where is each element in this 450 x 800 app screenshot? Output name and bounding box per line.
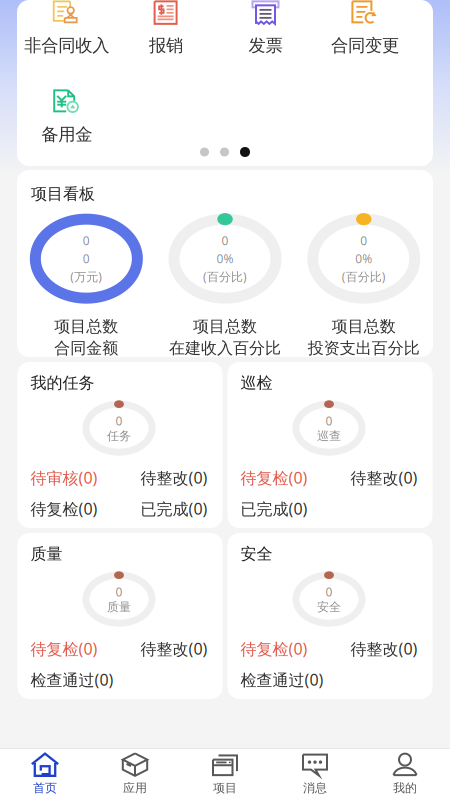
- staticText: 安全: [240, 544, 272, 564]
- button[interactable]: 待复检(0): [30, 498, 97, 520]
- staticText: 项目看板: [31, 184, 95, 204]
- staticText: 消息: [303, 781, 327, 795]
- staticText: 项目总数: [332, 317, 396, 336]
- staticText: (百分比): [342, 269, 386, 284]
- button[interactable]: 应用: [90, 748, 180, 800]
- staticText: (万元): [70, 269, 102, 284]
- staticText: 0: [115, 584, 122, 600]
- staticText: 应用: [123, 781, 147, 795]
- button[interactable]: 已完成(0): [240, 498, 307, 520]
- staticText: 巡查: [317, 429, 341, 443]
- staticText: 待审核(0): [30, 467, 97, 488]
- staticText: 在建收入百分比: [169, 338, 281, 358]
- button[interactable]: 待整改(0): [350, 467, 417, 489]
- staticText: 检查通过(0): [240, 669, 323, 690]
- button[interactable]: 待整改(0): [350, 638, 417, 660]
- button[interactable]: 待复检(0): [30, 638, 97, 660]
- button[interactable]: 合同变更: [315, 3, 415, 53]
- button[interactable]: 待审核(0): [30, 467, 97, 489]
- button[interactable]: 检查通过(0): [30, 669, 113, 691]
- staticText: 待复检(0): [240, 467, 307, 488]
- staticText: 报销: [149, 35, 183, 56]
- button[interactable]: 发票: [216, 3, 315, 53]
- button[interactable]: 报销: [116, 3, 216, 53]
- staticText: 0: [83, 233, 90, 249]
- staticText: 检查通过(0): [30, 669, 113, 690]
- staticText: 0%: [216, 251, 233, 267]
- staticText: 投资支出百分比: [308, 338, 420, 358]
- button[interactable]: 0: [294, 214, 433, 358]
- staticText: 0: [83, 251, 90, 267]
- staticText: 待复检(0): [30, 638, 97, 659]
- staticText: 巡检: [240, 373, 272, 393]
- staticText: 任务: [107, 429, 131, 443]
- staticText: 待整改(0): [140, 638, 207, 659]
- staticText: 项目总数: [193, 317, 257, 336]
- button[interactable]: 项目: [180, 748, 270, 800]
- staticText: 质量: [107, 600, 131, 614]
- button[interactable]: 我的: [360, 748, 450, 800]
- button[interactable]: 已完成(0): [140, 498, 207, 520]
- staticText: 安全: [317, 600, 341, 614]
- staticText: 发票: [248, 35, 282, 56]
- staticText: 已完成(0): [240, 498, 307, 519]
- staticText: 我的任务: [30, 373, 94, 393]
- staticText: 0: [115, 413, 122, 429]
- staticText: 我的: [393, 781, 417, 795]
- button[interactable]: 消息: [270, 748, 360, 800]
- staticText: 待整改(0): [350, 638, 417, 659]
- staticText: 0: [360, 233, 367, 249]
- staticText: 已完成(0): [140, 498, 207, 519]
- staticText: (百分比): [203, 269, 247, 284]
- button[interactable]: 非合同收入: [17, 3, 116, 53]
- staticText: 待整改(0): [350, 467, 417, 488]
- button[interactable]: 检查通过(0): [240, 669, 323, 691]
- staticText: 0: [325, 413, 332, 429]
- staticText: 首页: [33, 781, 57, 795]
- staticText: 待复检(0): [240, 638, 307, 659]
- staticText: 待复检(0): [30, 498, 97, 519]
- staticText: 合同变更: [331, 35, 399, 56]
- button[interactable]: 待复检(0): [240, 638, 307, 660]
- staticText: 0%: [355, 251, 372, 267]
- staticText: 合同金额: [54, 338, 118, 358]
- button[interactable]: 待整改(0): [140, 467, 207, 489]
- staticText: 备用金: [41, 124, 92, 145]
- button[interactable]: 0: [17, 214, 156, 358]
- button[interactable]: 备用金: [17, 92, 116, 142]
- staticText: 质量: [30, 544, 62, 564]
- staticText: 项目: [213, 781, 237, 795]
- button[interactable]: 首页: [0, 748, 90, 800]
- staticText: 待整改(0): [140, 467, 207, 488]
- staticText: 0: [325, 584, 332, 600]
- button[interactable]: 待复检(0): [240, 467, 307, 489]
- staticText: 非合同收入: [24, 35, 109, 56]
- staticText: 项目总数: [54, 317, 118, 336]
- button[interactable]: 待整改(0): [140, 638, 207, 660]
- staticText: 0: [221, 233, 228, 249]
- button[interactable]: 0: [156, 214, 294, 358]
